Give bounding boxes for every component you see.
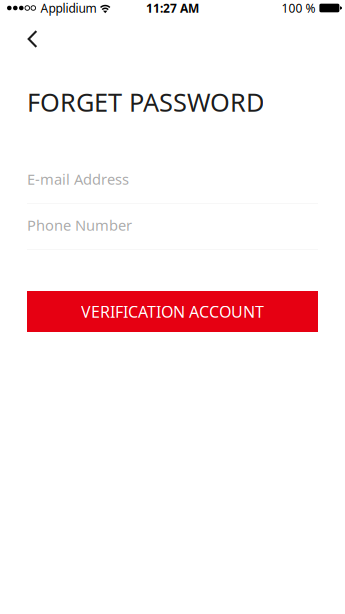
staticText: VERIFICATION ACCOUNT bbox=[81, 301, 264, 322]
staticText: FORGET PASSWORD bbox=[27, 85, 264, 119]
button[interactable]: Back bbox=[14, 20, 51, 54]
staticText: Applidium bbox=[41, 0, 97, 16]
button[interactable]: E-mail Address bbox=[27, 158, 318, 204]
staticText: Phone Number bbox=[27, 215, 132, 235]
staticText: 100 % bbox=[281, 0, 315, 16]
staticText: 11:27 AM bbox=[146, 0, 199, 16]
staticText: E-mail Address bbox=[27, 169, 129, 189]
button[interactable]: Phone Number bbox=[27, 204, 318, 250]
button[interactable]: VERIFICATION ACCOUNT bbox=[27, 291, 318, 332]
